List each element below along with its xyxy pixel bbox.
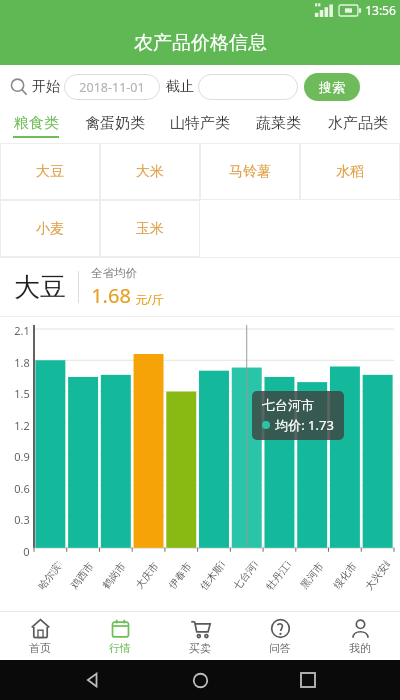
staticText: 2.1 [14,323,30,338]
button[interactable]: 水产品类 [315,109,400,143]
staticText: 鸡西市 [68,560,96,591]
staticText: 蔬菜类 [256,114,301,133]
staticText: 行情 [109,641,131,655]
staticText: 1.8 [14,355,30,370]
button[interactable]: 首页 [0,612,80,660]
staticText: 首页 [29,641,51,655]
button[interactable]: 水稻 [300,143,400,200]
button[interactable]: 粮食类 [0,109,72,143]
staticText: 大豆 [14,271,66,304]
staticText: 1.68 [91,282,131,309]
button[interactable]: 截止日期 [198,74,298,100]
staticText: 马铃薯 [229,163,271,181]
staticText: 我的 [349,641,371,655]
button[interactable]: 禽蛋奶类 [72,109,157,143]
button[interactable]: 返回 [78,665,108,695]
button[interactable]: 马铃薯 [200,143,300,200]
staticText: 大豆 [36,163,64,181]
staticText: 全省均价 [91,266,137,280]
button[interactable]: 买卖 [160,612,240,660]
staticText: 0 [23,544,30,559]
staticText: 大米 [136,163,164,181]
staticText: 小麦 [36,220,64,238]
staticText: 水稻 [336,163,364,181]
staticText: 1.5 [14,386,30,401]
staticText: 玉米 [136,220,164,238]
button[interactable]: 搜索 [8,76,30,98]
staticText: 山特产类 [170,114,230,133]
button[interactable]: 小麦 [0,200,100,257]
staticText: 2018-11-01 [79,79,145,96]
staticText: 大庆市 [133,560,161,591]
button[interactable]: 2018-11-01 [64,74,160,100]
button[interactable]: 最近任务 [293,665,323,695]
staticText: 截止 [166,78,194,96]
staticText: 哈尔滨市 [35,559,65,592]
staticText: 元/斤 [135,291,164,307]
staticText: 佳木斯市 [197,558,228,592]
staticText: 买卖 [189,641,211,655]
staticText: 0.3 [14,512,30,527]
staticText: 开始 [32,78,60,96]
staticText: 黑河市 [298,560,326,591]
button[interactable]: 大米 [100,143,200,200]
button[interactable]: 山特产类 [157,109,242,143]
staticText: 农产品价格信息 [134,31,267,55]
button[interactable]: 搜索 [304,73,360,101]
staticText: 禽蛋奶类 [85,114,145,133]
staticText: 绥化市 [331,560,359,591]
staticText: 粮食类 [14,114,59,133]
staticText: 牡丹江市 [263,558,294,592]
staticText: 七台河市 [230,558,261,592]
staticText: 水产品类 [328,114,388,133]
staticText: 七台河市 [262,397,314,413]
staticText: 1.2 [14,418,30,433]
staticText: 问答 [269,641,291,655]
button[interactable]: 蔬菜类 [242,109,315,143]
button[interactable]: 主屏幕 [185,665,215,695]
button[interactable]: 我的 [320,612,400,660]
staticText: 搜索 [319,79,345,95]
staticText: 均价: 1.73 [275,416,334,434]
staticText: 伊春市 [166,560,194,591]
staticText: 13:56 [365,2,396,18]
staticText: 0.9 [14,449,30,464]
button[interactable]: 行情 [80,612,160,660]
staticText: 鹤岗市 [100,560,128,591]
button[interactable]: 玉米 [100,200,200,257]
staticText: 大兴安岭地区 [362,558,393,592]
staticText: 0.6 [14,481,30,496]
button[interactable]: 问答 [240,612,320,660]
button[interactable]: 大豆 [0,143,100,200]
